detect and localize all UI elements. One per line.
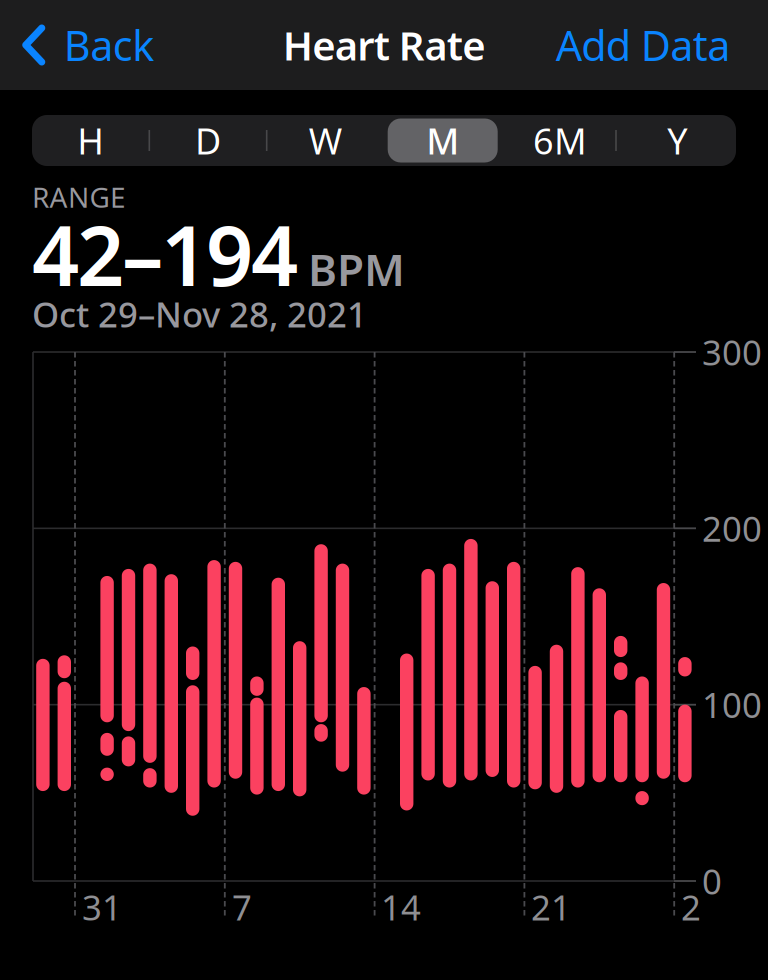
staticText: 2	[681, 884, 701, 930]
button[interactable]: M	[384, 115, 501, 166]
staticText: Heart Rate	[283, 18, 485, 71]
staticText: H	[77, 117, 104, 164]
button[interactable]: Back	[22, 0, 154, 90]
staticText: 300	[702, 329, 762, 375]
staticText: BPM	[308, 240, 405, 298]
staticText: 31	[82, 884, 122, 930]
staticText: M	[426, 117, 459, 164]
staticText: 200	[702, 505, 762, 551]
staticText: RANGE	[32, 178, 126, 216]
button[interactable]: 6M	[501, 115, 618, 166]
staticText: 42–194	[32, 199, 298, 309]
button[interactable]: Y	[619, 115, 736, 166]
staticText: Y	[667, 117, 687, 164]
staticText: 14	[381, 884, 421, 930]
staticText: Oct 29–Nov 28, 2021	[32, 291, 367, 337]
staticText: 6M	[533, 117, 587, 164]
staticText: 100	[702, 682, 762, 728]
staticText: 7	[232, 884, 252, 930]
button[interactable]: H	[32, 115, 149, 166]
button[interactable]: W	[267, 115, 384, 166]
staticText: 21	[531, 884, 571, 930]
staticText: Back	[64, 18, 154, 72]
staticText: D	[195, 117, 221, 164]
staticText: Add Data	[556, 18, 730, 72]
button[interactable]: D	[149, 115, 266, 166]
staticText: W	[309, 117, 342, 164]
button[interactable]: Add Data	[556, 0, 730, 90]
staticText: 0	[702, 858, 722, 904]
